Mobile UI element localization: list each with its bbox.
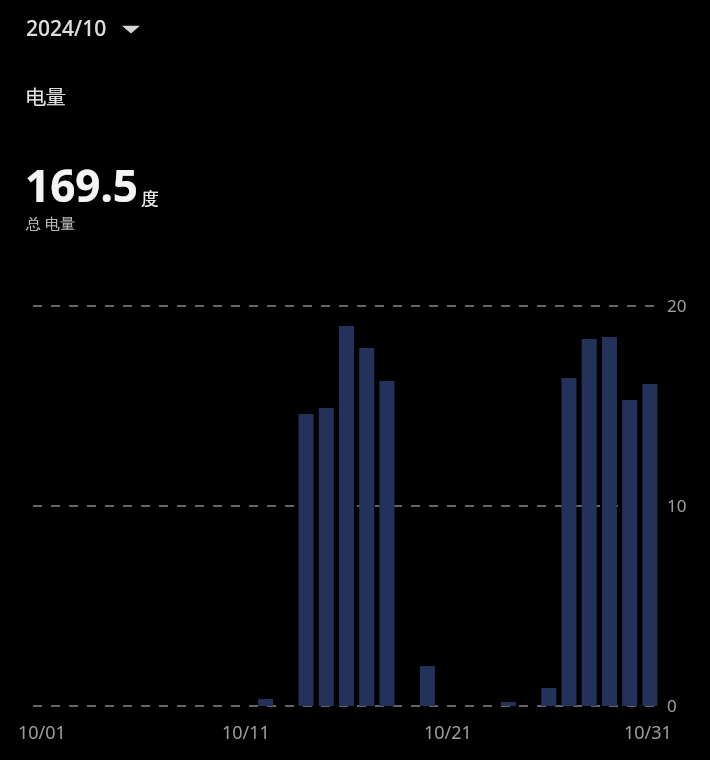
staticText: 20 [667,294,687,317]
staticText: 10/11 [222,720,270,745]
staticText: 169.5 [25,155,139,215]
staticText: 10/31 [624,720,672,745]
staticText: 度 [141,188,159,211]
staticText: 10 [667,494,687,517]
button[interactable]: 2024/10 [20,8,146,49]
staticText: 2024/10 [26,14,107,43]
staticText: 总 电量 [26,213,75,233]
other: Change month [122,23,140,35]
staticText: 0 [667,694,677,717]
staticText: 电量 [26,85,66,110]
staticText: 10/21 [424,720,472,745]
staticText: 10/01 [18,720,66,745]
